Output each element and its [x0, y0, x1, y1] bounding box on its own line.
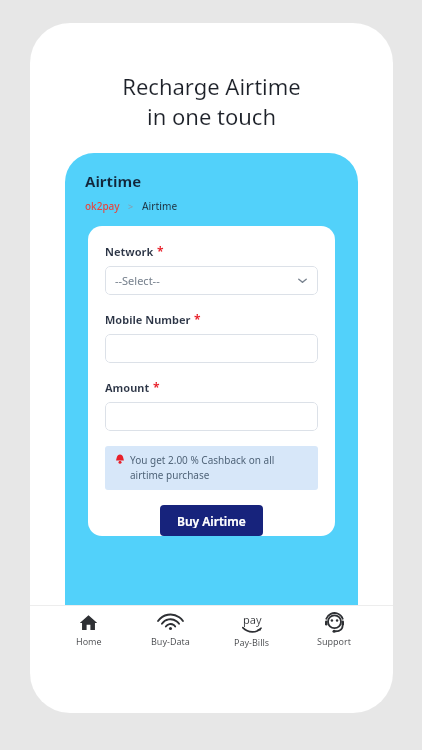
- staticText: *: [194, 311, 201, 327]
- other: Buy Data: [161, 613, 180, 632]
- staticText: Network: [105, 244, 154, 259]
- staticText: Buy-Data: [151, 635, 190, 647]
- staticText: Buy Airtime: [177, 513, 246, 528]
- staticText: >: [128, 200, 134, 212]
- staticText: --Select--: [115, 273, 160, 288]
- button[interactable]: --Select--: [105, 266, 318, 295]
- button[interactable]: Buy Airtime: [160, 505, 263, 536]
- staticText: Pay-Bills: [234, 636, 270, 648]
- staticText: *: [153, 379, 160, 395]
- button[interactable]: Support: [293, 606, 375, 654]
- other: Support: [325, 613, 344, 632]
- staticText: Amount: [105, 380, 150, 395]
- button[interactable]: ok2pay: [85, 199, 120, 213]
- other: Pay Bills: [242, 612, 262, 633]
- button[interactable]: Pay Bills: [211, 606, 293, 654]
- button[interactable]: Buy Data: [129, 606, 211, 654]
- staticText: Mobile Number: [105, 312, 191, 327]
- staticText: Airtime: [85, 171, 142, 191]
- button[interactable]: Home: [48, 606, 129, 654]
- staticText: Airtime: [142, 199, 178, 213]
- staticText: pay: [243, 612, 262, 627]
- button[interactable]: [105, 334, 318, 363]
- button[interactable]: [105, 402, 318, 431]
- other: Home: [79, 613, 98, 632]
- staticText: Home: [76, 635, 102, 647]
- staticText: *: [157, 243, 164, 259]
- staticText: You get 2.00 % Cashback on all airtime p…: [130, 453, 310, 482]
- staticText: Recharge Airtime in one touch: [30, 71, 393, 131]
- staticText: Support: [317, 635, 351, 647]
